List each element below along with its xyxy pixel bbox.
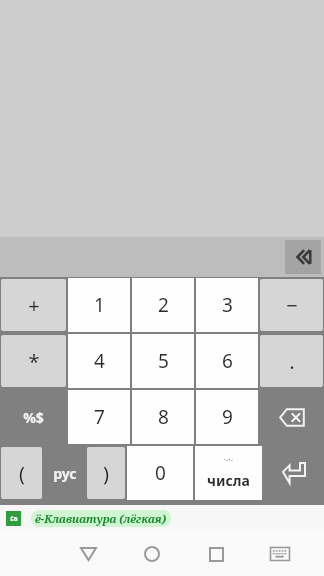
button[interactable]: .: [260, 335, 323, 387]
button[interactable]: (: [1, 447, 42, 499]
button[interactable]: +: [1, 279, 66, 331]
staticText: 2: [158, 292, 169, 318]
staticText: 8: [158, 404, 169, 430]
button[interactable]: 5: [132, 334, 194, 388]
button[interactable]: Back: [66, 532, 110, 576]
button[interactable]: 2: [132, 278, 194, 332]
button[interactable]: •–•–: [195, 446, 262, 500]
staticText: рус: [53, 464, 77, 483]
staticText: •–•–: [224, 457, 233, 464]
staticText: +: [28, 292, 40, 319]
button[interactable]: Backspace: [259, 389, 324, 445]
button[interactable]: Enter: [263, 445, 324, 501]
staticText: (: [19, 460, 25, 487]
button[interactable]: 6: [196, 334, 258, 388]
button[interactable]: 8: [132, 390, 194, 444]
button[interactable]: Switch keyboard: [258, 532, 302, 576]
button[interactable]: 7: [68, 390, 130, 444]
button[interactable]: ): [87, 447, 125, 499]
button[interactable]: Home: [130, 532, 174, 576]
staticText: ё-Клавиатура (лёгкая): [35, 511, 167, 526]
button[interactable]: %$: [0, 389, 67, 445]
button[interactable]: 9: [196, 390, 258, 444]
button[interactable]: *: [1, 335, 66, 387]
staticText: *: [28, 348, 40, 375]
staticText: числа: [207, 471, 250, 490]
staticText: .: [289, 348, 295, 375]
button[interactable]: −: [260, 279, 323, 331]
staticText: −: [286, 292, 298, 319]
staticText: 0: [155, 460, 166, 486]
staticText: %$: [23, 408, 44, 427]
button[interactable]: 0: [127, 446, 193, 500]
button[interactable]: 1: [68, 278, 130, 332]
button[interactable]: 3: [196, 278, 258, 332]
button[interactable]: рус: [43, 445, 86, 501]
staticText: ): [103, 460, 109, 487]
staticText: 9: [222, 404, 233, 430]
staticText: 4: [94, 348, 105, 374]
staticText: 1: [94, 292, 105, 318]
staticText: 5: [158, 348, 169, 374]
button[interactable]: 4: [68, 334, 130, 388]
staticText: 7: [94, 404, 105, 430]
staticText: ЁБ: [10, 515, 18, 523]
button[interactable]: Recent apps: [194, 532, 238, 576]
button[interactable]: Hide keyboard: [285, 240, 321, 274]
staticText: 3: [222, 292, 233, 318]
staticText: 6: [222, 348, 233, 374]
